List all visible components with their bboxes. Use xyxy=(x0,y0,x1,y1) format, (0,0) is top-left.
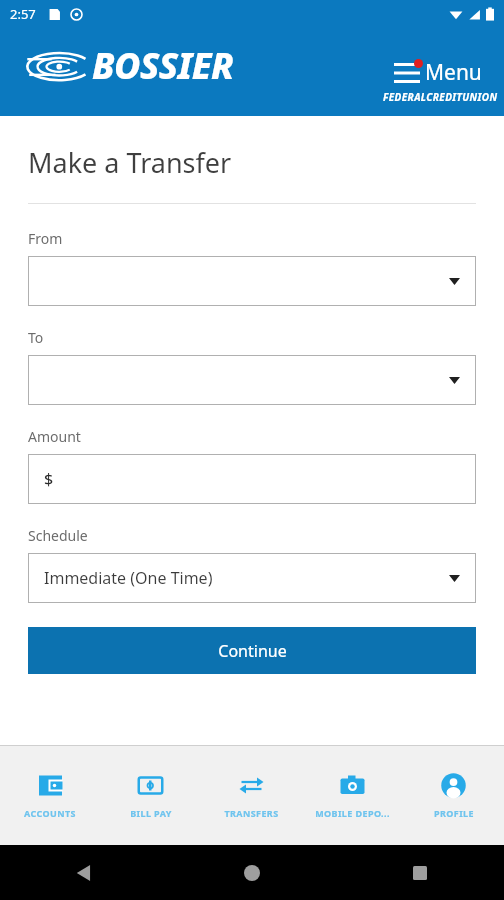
staticText: 2:57 xyxy=(10,5,36,23)
staticText: BOSSIER xyxy=(92,41,234,90)
other: Transfers xyxy=(239,773,264,798)
button[interactable]: To account xyxy=(28,355,476,405)
staticText: To xyxy=(28,328,44,347)
button[interactable]: Bossier Federal Credit Union xyxy=(26,41,504,104)
staticText: From xyxy=(28,229,63,248)
staticText: Immediate (One Time) xyxy=(44,567,213,589)
other: Bill Pay xyxy=(138,773,163,798)
other: Accounts xyxy=(38,773,63,798)
staticText: $ xyxy=(44,468,54,490)
staticText: TRANSFERS xyxy=(224,807,279,819)
staticText: PROFILE xyxy=(434,807,474,819)
staticText: Continue xyxy=(218,640,287,662)
button[interactable]: Home xyxy=(244,865,260,881)
button[interactable]: Transfers xyxy=(201,765,302,827)
staticText: ACCOUNTS xyxy=(24,807,76,819)
button[interactable]: From account xyxy=(28,256,476,306)
button[interactable]: Back xyxy=(76,865,92,881)
button[interactable]: Continue xyxy=(28,627,476,674)
button[interactable]: Schedule xyxy=(28,553,476,603)
staticText: Make a Transfer xyxy=(28,144,232,181)
button[interactable]: Bill Pay xyxy=(100,765,201,827)
button[interactable]: Accounts xyxy=(0,765,100,827)
button[interactable]: Menu xyxy=(390,54,486,91)
other: Profile xyxy=(441,773,466,798)
staticText: BILL PAY xyxy=(130,807,172,819)
staticText: Menu xyxy=(425,58,482,87)
staticText: MOBILE DEPO... xyxy=(315,807,390,819)
button[interactable]: Mobile Deposit xyxy=(302,765,403,827)
button[interactable]: Amount xyxy=(28,454,476,504)
button[interactable]: Recents xyxy=(413,866,427,880)
staticText: Amount xyxy=(28,427,81,446)
button[interactable]: Profile xyxy=(403,765,504,827)
staticText: Schedule xyxy=(28,526,88,545)
staticText: FEDERALCREDITUNION xyxy=(383,90,498,104)
other: Mobile Deposit xyxy=(340,773,365,798)
